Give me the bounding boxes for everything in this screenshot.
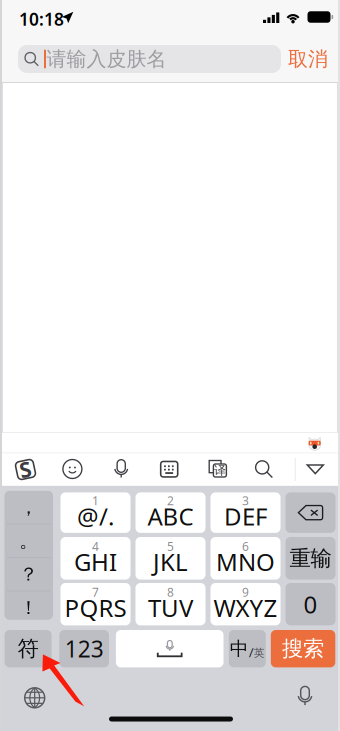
button[interactable]: Switch keyboard [24,687,45,708]
button[interactable]: 重输 [285,537,335,580]
staticText: 中 [230,637,249,660]
staticText: 2 [167,493,174,509]
button[interactable]: 符 [5,630,52,667]
button[interactable]: Hide keyboard [306,463,324,475]
button[interactable]: ， [4,491,53,524]
button[interactable]: Space [116,630,223,667]
button[interactable]: JKL [135,537,205,580]
button[interactable]: 0 [285,583,335,625]
staticText: 6 [242,538,249,554]
button[interactable]: 123 [59,630,109,667]
staticText: ， [19,496,38,519]
button[interactable]: 搜索 [271,630,335,667]
staticText: GHI [74,546,117,578]
staticText: 1 [92,493,99,509]
staticText: JKL [153,546,188,578]
button[interactable]: GHI [60,537,130,580]
staticText: 英 [254,646,265,659]
staticText: @/. [77,500,114,532]
button[interactable]: Emoji [63,459,82,478]
staticText: TUV [148,592,193,624]
staticText: 123 [65,634,104,664]
staticText: 重输 [289,545,331,571]
button[interactable]: PQRS [60,583,130,625]
button[interactable]: Delete [285,492,335,533]
staticText: ？ [19,563,38,586]
button[interactable]: 取消 [288,45,328,73]
staticText: ABC [147,500,193,532]
staticText: 5 [167,538,174,554]
staticText: 10:18 [19,7,64,30]
button[interactable]: 。 [4,524,53,557]
button[interactable]: MNO [210,537,280,580]
button[interactable]: DEF [210,492,280,533]
staticText: 译 [214,463,226,478]
button[interactable]: ABC [135,492,205,533]
staticText: 7 [92,584,99,600]
button[interactable]: Search [254,459,273,478]
staticText: S [19,455,31,483]
button[interactable]: TUV [135,583,205,625]
button[interactable]: @/. [60,492,130,533]
button[interactable]: Voice input [112,459,131,479]
staticText: ！ [19,596,38,619]
staticText: PQRS [64,592,126,624]
staticText: WXYZ [213,592,277,624]
staticText: 3 [242,493,249,509]
button[interactable]: Translate [208,459,227,478]
staticText: 取消 [288,47,328,71]
button[interactable]: ！ [4,591,53,624]
button[interactable]: Sogou input [16,460,34,478]
button[interactable]: Dictation [295,686,315,707]
staticText: 。 [19,529,38,552]
staticText: MNO [216,546,275,578]
button[interactable]: WXYZ [210,583,280,625]
staticText: / [249,643,254,661]
button[interactable]: 中 [229,630,266,667]
staticText: 符 [18,636,39,662]
staticText: DEF [224,500,267,532]
button[interactable]: ？ [4,558,53,591]
staticText: 搜索 [282,636,324,662]
staticText: 请输入皮肤名 [46,47,166,71]
button[interactable]: Keyboard layout [160,461,178,477]
staticText: 9 [242,584,249,600]
staticText: 8 [167,584,174,600]
staticText: 4 [92,538,99,554]
staticText: 0 [303,588,317,620]
